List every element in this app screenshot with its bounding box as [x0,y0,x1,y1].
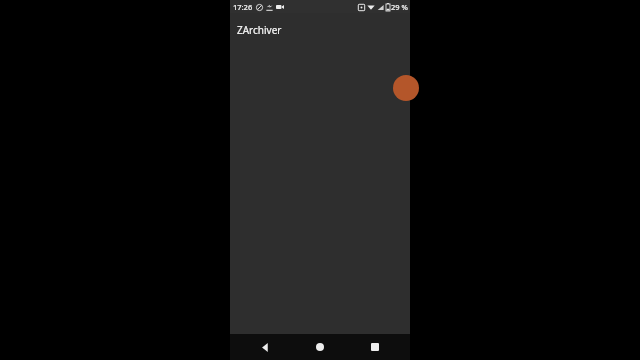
button[interactable]: Recent apps [355,334,395,360]
staticText: ZArchiver [237,23,282,37]
staticText: 29 % [391,2,408,12]
button[interactable]: Create [393,75,419,101]
staticText: 17:26 [233,2,253,12]
button[interactable]: Back [245,334,285,360]
button[interactable]: Home [300,334,340,360]
